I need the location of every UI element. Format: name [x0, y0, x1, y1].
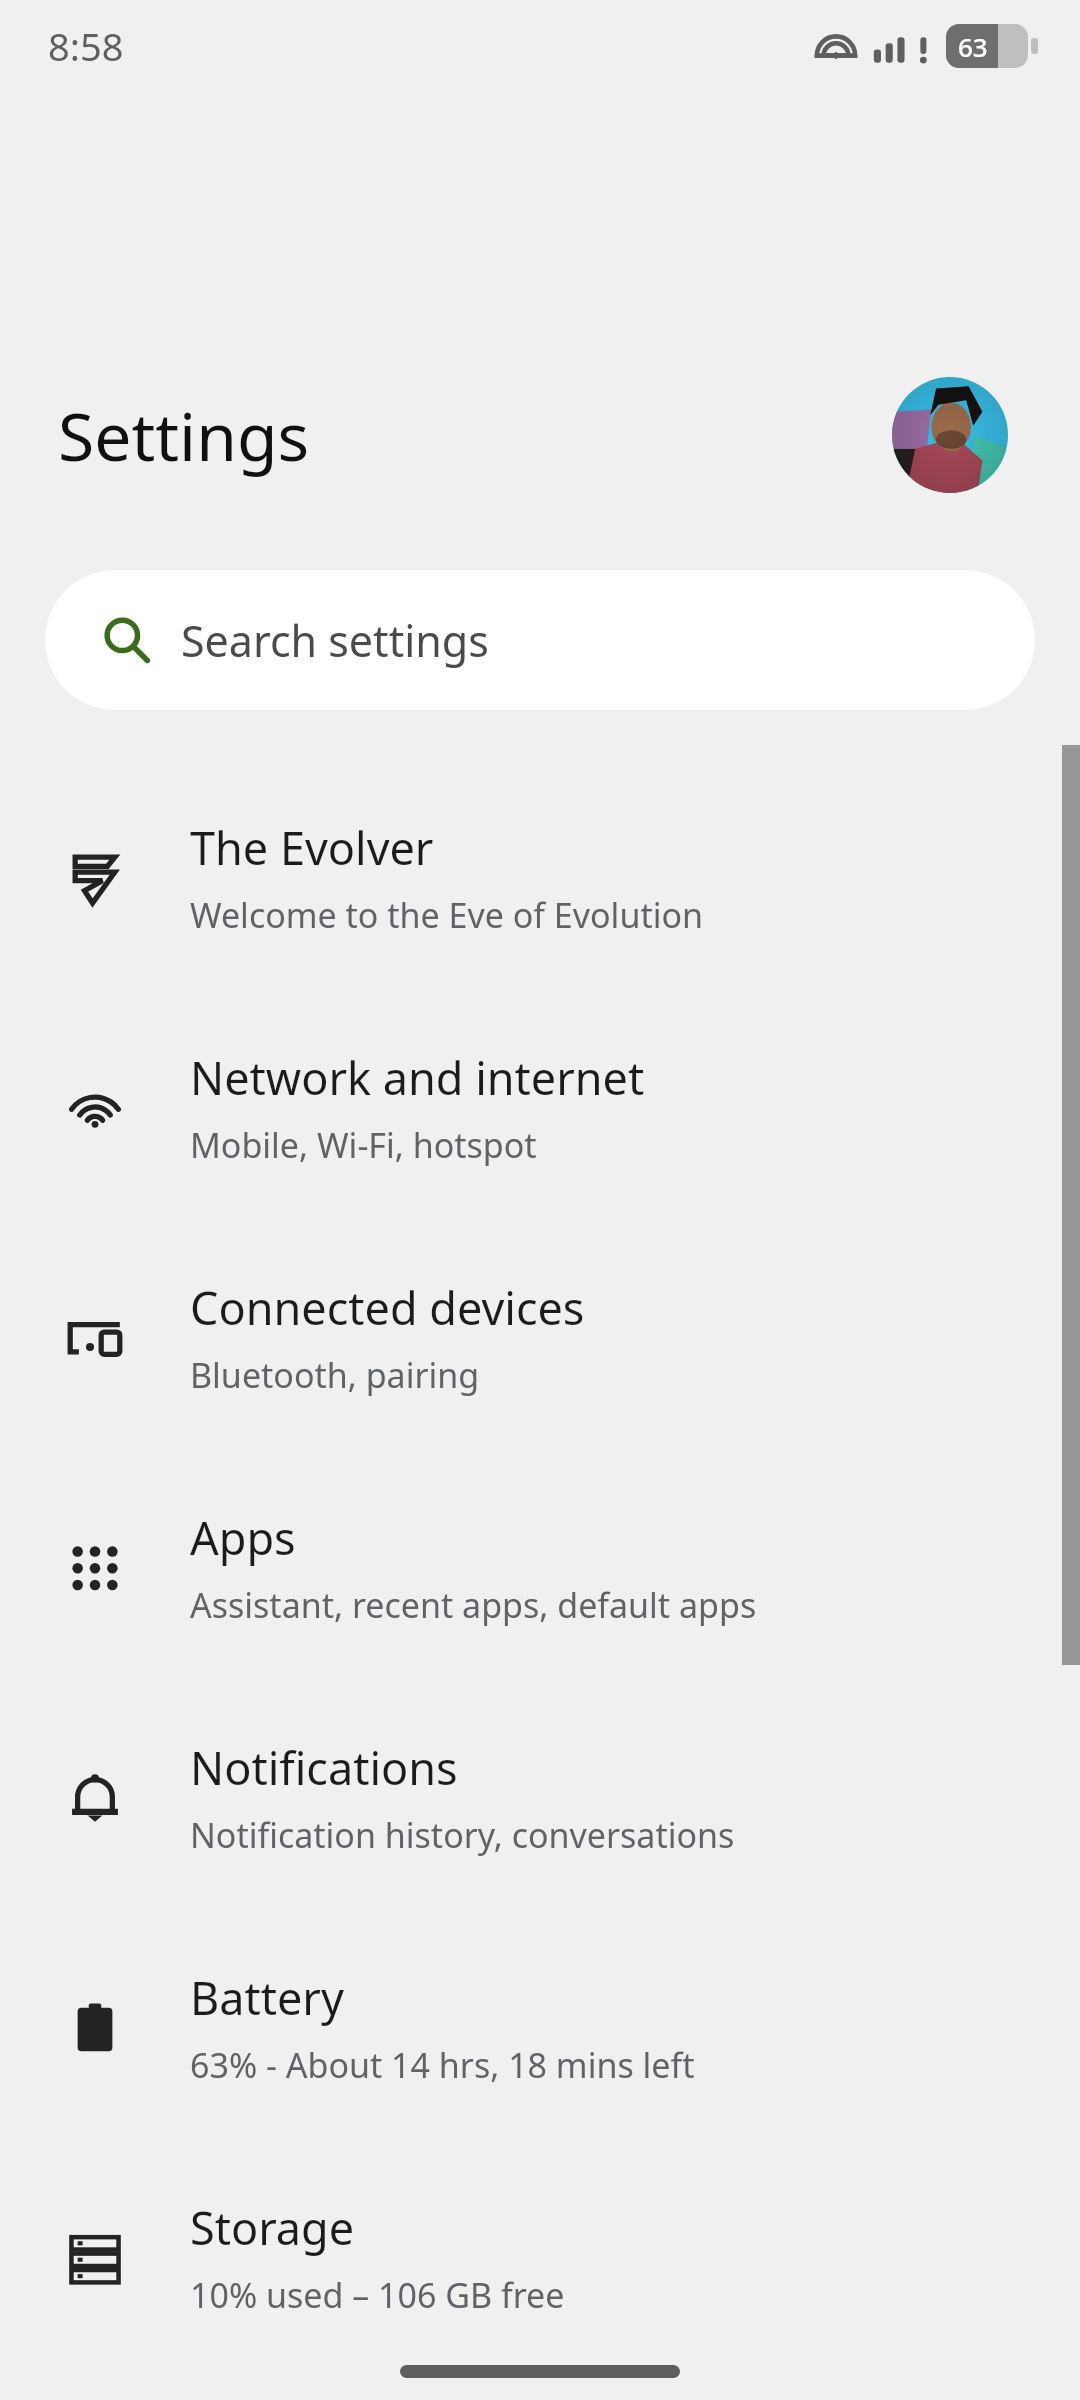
button[interactable]: Network and internet: [0, 992, 1080, 1222]
staticText: Apps: [190, 1507, 296, 1568]
staticText: Notifications: [190, 1737, 458, 1798]
button[interactable]: Connected devices: [0, 1222, 1080, 1452]
staticText: Battery: [190, 1967, 344, 2028]
staticText: Connected devices: [190, 1277, 585, 1338]
button[interactable]: Storage: [0, 2142, 1080, 2372]
staticText: Notification history, conversations: [190, 1812, 735, 1858]
button[interactable]: Apps: [0, 1452, 1080, 1682]
staticText: Settings: [58, 390, 310, 480]
staticText: Welcome to the Eve of Evolution: [190, 892, 704, 938]
staticText: Network and internet: [190, 1047, 645, 1108]
button[interactable]: Notifications: [0, 1682, 1080, 1912]
button[interactable]: Search settings: [45, 570, 1035, 710]
staticText: 63: [958, 29, 988, 64]
staticText: Mobile, Wi-Fi, hotspot: [190, 1122, 537, 1168]
staticText: 63% - About 14 hrs, 18 mins left: [190, 2042, 695, 2088]
staticText: Search settings: [181, 611, 489, 670]
button[interactable]: Battery: [0, 1912, 1080, 2142]
button[interactable]: The Evolver: [0, 762, 1080, 992]
staticText: 8:58: [48, 20, 124, 72]
staticText: Assistant, recent apps, default apps: [190, 1582, 757, 1628]
staticText: The Evolver: [190, 817, 434, 878]
staticText: 10% used – 106 GB free: [190, 2272, 565, 2318]
staticText: Bluetooth, pairing: [190, 1352, 480, 1398]
button[interactable]: Account avatar: [892, 377, 1008, 493]
staticText: Storage: [190, 2197, 355, 2258]
